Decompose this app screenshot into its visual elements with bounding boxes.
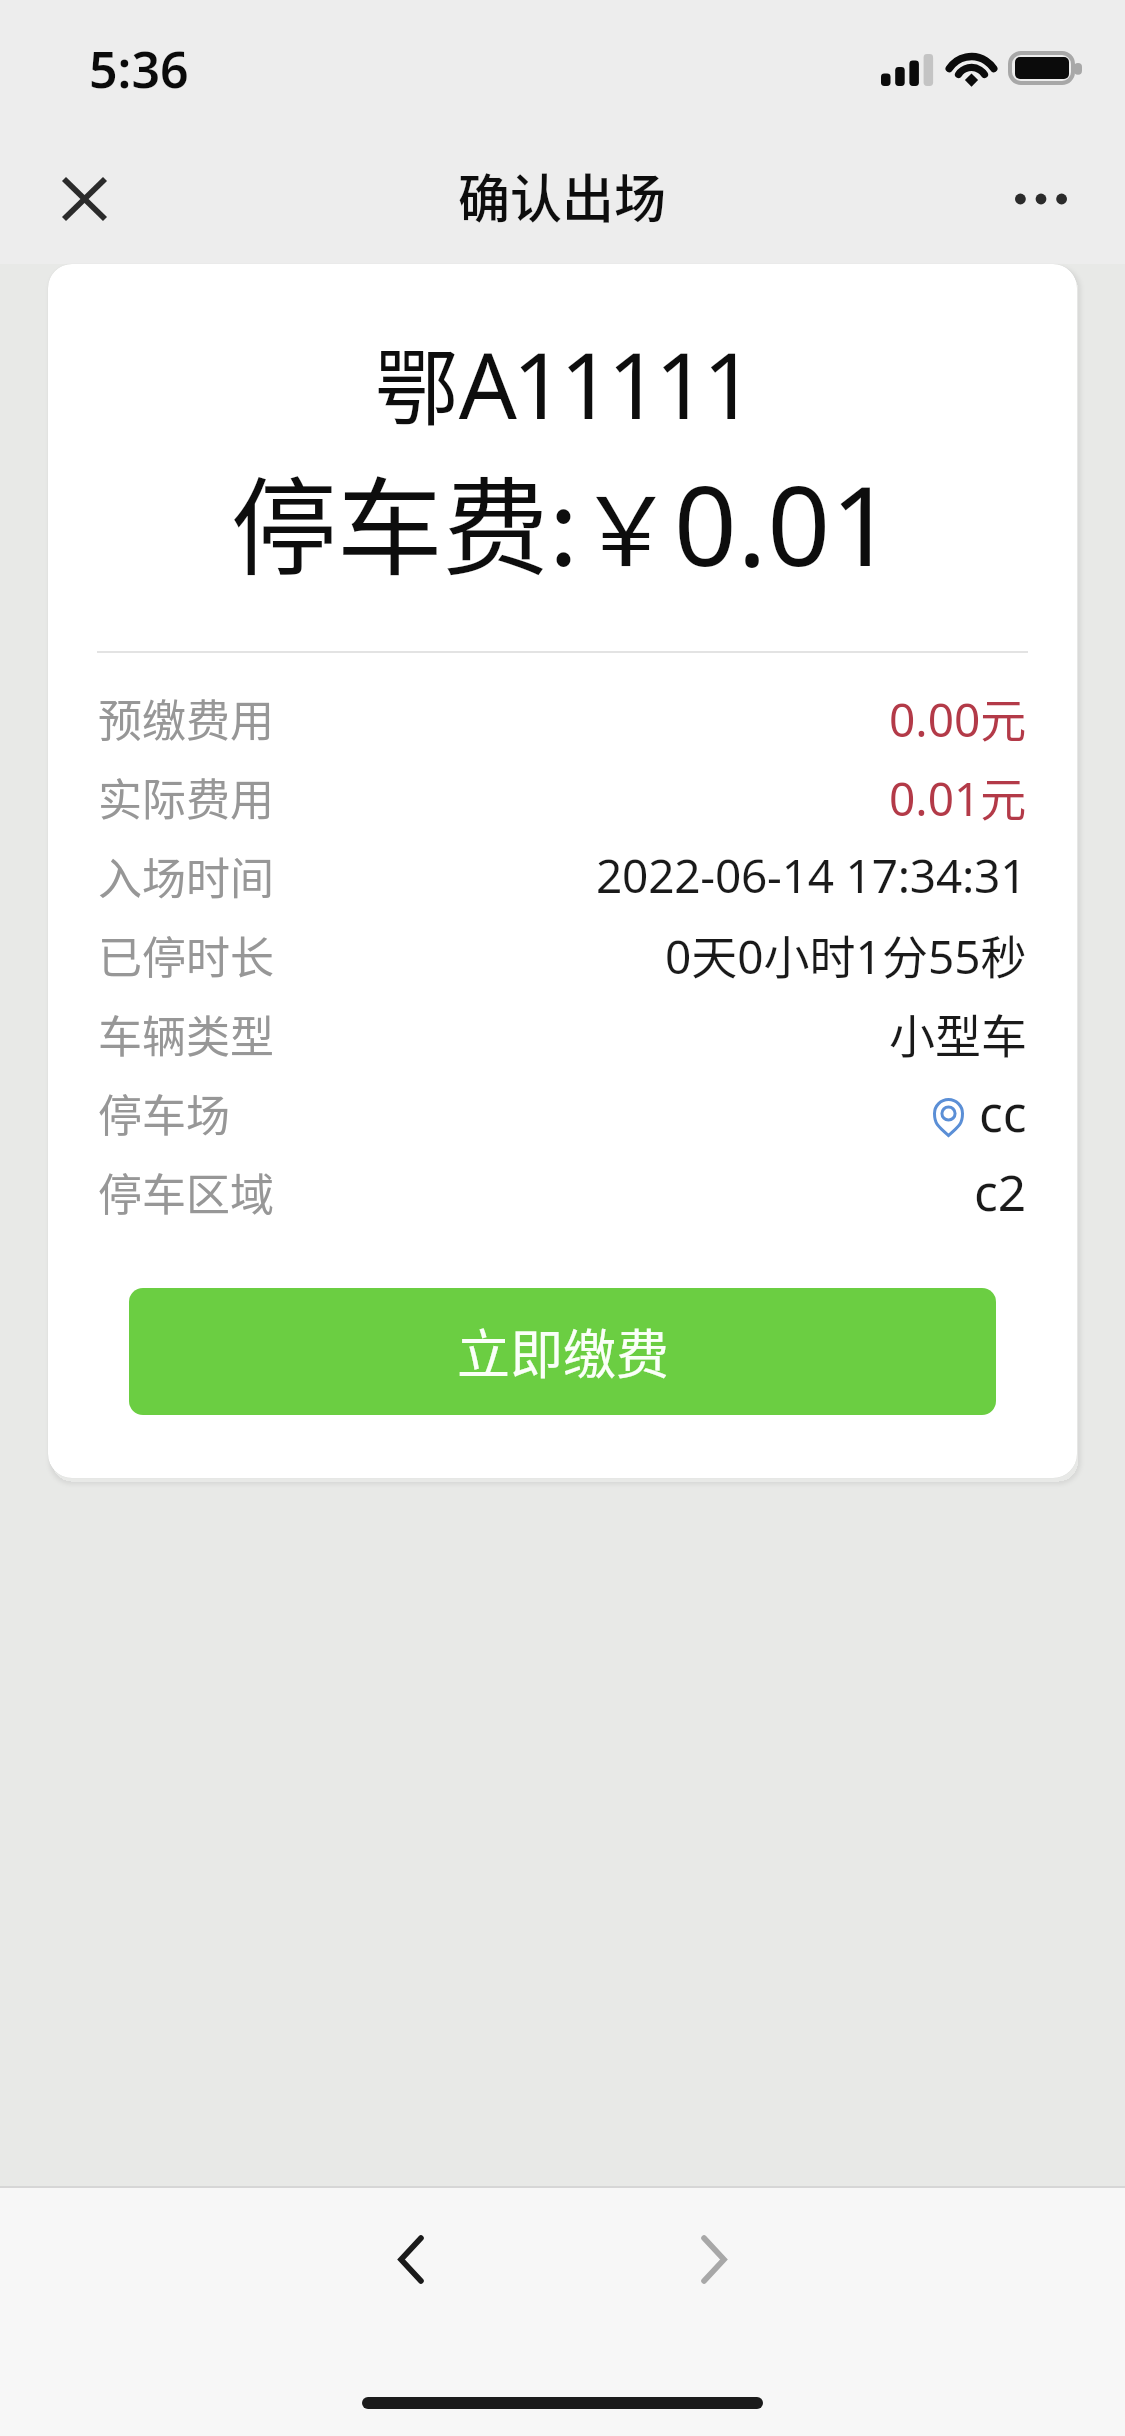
- button[interactable]: More options: [995, 153, 1086, 244]
- button[interactable]: Forward: [668, 2213, 760, 2305]
- staticText: 停车费:￥0.01: [48, 443, 1077, 598]
- staticText: 0.00元: [889, 684, 1027, 751]
- staticText: 小型车: [889, 1000, 1027, 1067]
- button[interactable]: Close: [39, 153, 130, 244]
- button[interactable]: Back: [365, 2213, 457, 2305]
- staticText: 0天0小时1分55秒: [665, 921, 1027, 988]
- staticText: 实际费用: [98, 765, 274, 829]
- staticText: cc: [979, 1079, 1027, 1147]
- staticText: c2: [974, 1158, 1027, 1226]
- staticText: 立即缴费: [457, 1313, 669, 1390]
- button[interactable]: 立即缴费: [129, 1288, 996, 1415]
- staticText: 入场时间: [98, 844, 274, 908]
- staticText: 5:36: [89, 35, 189, 103]
- staticText: 停车区域: [98, 1160, 274, 1224]
- staticText: 0.01元: [889, 763, 1027, 830]
- staticText: 车辆类型: [98, 1002, 274, 1066]
- staticText: 停车场: [98, 1081, 230, 1145]
- staticText: 鄂A11111: [48, 322, 1077, 446]
- staticText: 确认出场: [458, 158, 667, 233]
- staticText: 2022-06-14 17:34:31: [596, 844, 1027, 907]
- staticText: 已停时长: [98, 923, 274, 987]
- staticText: 预缴费用: [98, 686, 274, 750]
